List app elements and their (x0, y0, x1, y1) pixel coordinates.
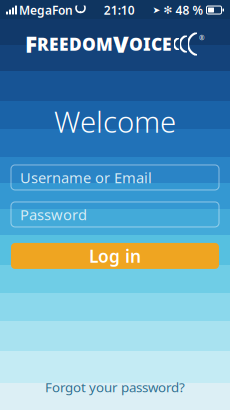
staticText: OICE (129, 32, 172, 55)
staticText: REEDOM (37, 32, 113, 55)
staticText: ® (199, 34, 205, 42)
staticText: Forgot your password? (45, 378, 185, 396)
staticText: F (25, 29, 37, 59)
button[interactable]: Forgot your password? (45, 378, 185, 396)
staticText: ✻ (163, 4, 172, 16)
staticText: V (113, 29, 129, 59)
button[interactable]: Log in (11, 243, 219, 269)
staticText: Username or Email (20, 168, 152, 187)
staticText: Welcome (54, 102, 176, 141)
staticText: 48 % (175, 2, 203, 18)
staticText: Password (20, 205, 87, 224)
staticText: MegaFon (19, 2, 73, 18)
button[interactable]: Username or Email (11, 165, 219, 190)
staticText: Log in (89, 244, 141, 267)
button[interactable]: Password (11, 202, 219, 227)
staticText: ➤ (152, 5, 160, 15)
staticText: 21:10 (104, 2, 135, 18)
